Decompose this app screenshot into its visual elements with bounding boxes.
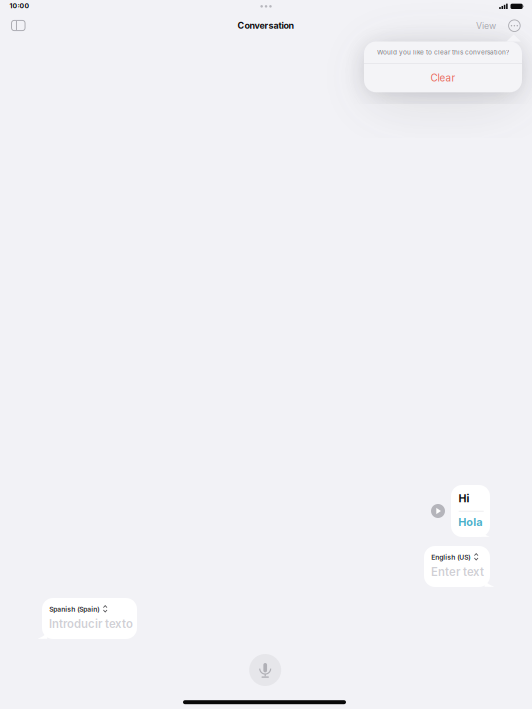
button[interactable]: View bbox=[469, 15, 503, 37]
button[interactable]: Play translation bbox=[428, 501, 448, 521]
staticText: Conversation bbox=[237, 20, 294, 31]
staticText: Hola bbox=[458, 515, 482, 529]
button[interactable]: English (US) bbox=[424, 546, 490, 587]
staticText: Spanish (Spain) bbox=[49, 605, 99, 613]
button[interactable]: Hi bbox=[451, 485, 497, 537]
staticText: View bbox=[476, 20, 496, 31]
button[interactable]: Clear bbox=[364, 64, 522, 92]
staticText: Would you like to clear this conversatio… bbox=[377, 48, 509, 56]
staticText: Hi bbox=[458, 492, 469, 505]
button[interactable]: Spanish (Spain) bbox=[42, 598, 137, 639]
button[interactable]: More options bbox=[503, 15, 525, 37]
staticText: Introducir texto bbox=[49, 617, 133, 631]
button[interactable]: Toggle Sidebar bbox=[3, 12, 33, 38]
button[interactable]: Start conversation bbox=[249, 654, 281, 686]
staticText: 10:00 bbox=[9, 2, 29, 10]
staticText: Clear bbox=[430, 72, 455, 84]
staticText: Enter text bbox=[431, 565, 484, 579]
staticText: English (US) bbox=[431, 553, 470, 561]
